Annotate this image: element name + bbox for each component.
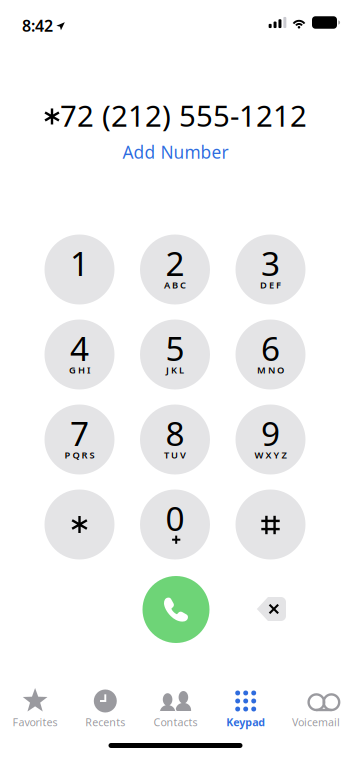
staticText: G H I [69,364,90,376]
button[interactable]: 9 [235,404,305,474]
staticText: D E F [260,279,281,291]
staticText: 7 [70,411,89,455]
staticText: W X Y Z [254,449,286,461]
staticText: Recents [85,715,125,729]
staticText: Contacts [153,715,197,729]
button[interactable]: Call [142,576,209,643]
button[interactable]: 5 [140,319,210,389]
staticText: 6 [261,326,280,370]
button[interactable]: 7 [44,404,114,474]
staticText: A B C [164,279,186,291]
button[interactable]: Contacts [140,684,211,732]
button[interactable] [235,489,305,559]
button[interactable]: 6 [235,319,305,389]
staticText: 9 [261,411,280,455]
staticText: 3 [261,241,280,285]
staticText: 5 [165,326,184,370]
staticText: P Q R S [64,449,94,461]
button[interactable]: 3 [235,234,305,304]
staticText: M N O [257,364,284,376]
staticText: 8:42 [22,15,53,36]
staticText: 2 [165,241,184,285]
staticText: 8 [165,411,184,455]
button[interactable]: 8 [140,404,210,474]
staticText: 1 [70,241,89,285]
button[interactable]: Keypad [211,684,281,732]
staticText: Voicemail [292,715,340,729]
staticText: Add Number [122,140,228,163]
button[interactable]: 2 [140,234,210,304]
button[interactable]: 0 [140,489,210,559]
staticText: Keypad [226,715,265,729]
button[interactable]: 4 [44,319,114,389]
staticText: 0 [165,496,184,540]
staticText: J K L [166,364,184,376]
staticText: Favorites [13,715,58,729]
staticText: 72 (212) 555-1212 [60,96,307,135]
button[interactable]: Voicemail [281,684,351,732]
button[interactable]: Recents [70,684,140,732]
staticText: 4 [70,326,89,370]
button[interactable] [44,489,114,559]
button[interactable]: Favorites [0,684,70,732]
button[interactable]: 1 [44,234,114,304]
staticText: T U V [164,449,186,461]
button[interactable]: Delete [249,587,293,631]
button[interactable]: Add Number [0,142,351,162]
